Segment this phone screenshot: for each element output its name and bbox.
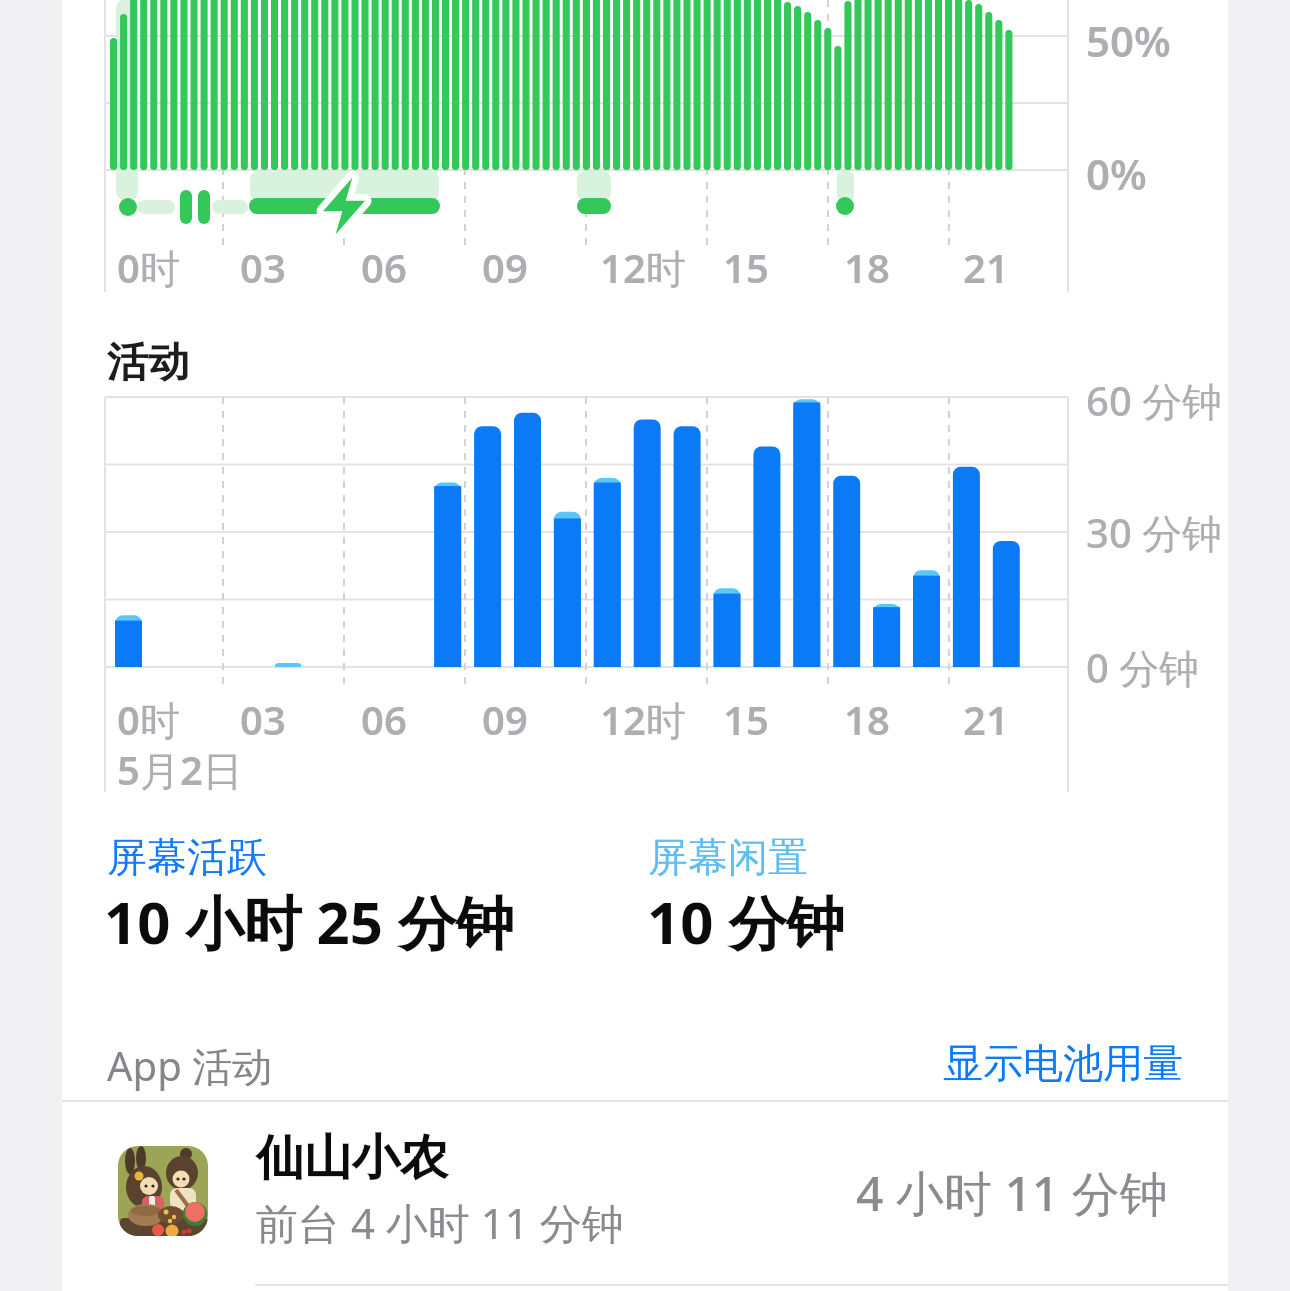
staticText: 06: [361, 692, 407, 746]
staticText: 03: [240, 692, 286, 746]
button[interactable]: 显示电池用量: [943, 1038, 1183, 1088]
staticText: 0 分钟: [1086, 640, 1200, 695]
staticText: 0时: [117, 240, 180, 295]
staticText: 屏幕活跃: [107, 832, 267, 882]
staticText: 5月2日: [117, 742, 243, 797]
staticText: 21: [963, 692, 1009, 746]
staticText: 06: [361, 240, 407, 294]
staticText: 仙山小农: [256, 1128, 448, 1188]
staticText: 18: [844, 240, 890, 294]
button[interactable]: [62, 1102, 1228, 1286]
staticText: 03: [240, 240, 286, 294]
staticText: 10 小时 25 分钟: [104, 882, 514, 961]
staticText: 0时: [117, 692, 180, 747]
staticText: 前台 4 小时 11 分钟: [256, 1194, 624, 1251]
staticText: 15: [723, 692, 769, 746]
staticText: 15: [723, 240, 769, 294]
staticText: 09: [482, 240, 528, 294]
staticText: 0%: [1086, 145, 1147, 202]
staticText: 60 分钟: [1086, 373, 1223, 428]
staticText: 10 分钟: [647, 882, 845, 961]
staticText: 50%: [1086, 12, 1171, 69]
staticText: 4 小时 11 分钟: [856, 1160, 1168, 1226]
staticText: 21: [963, 240, 1009, 294]
staticText: 18: [844, 692, 890, 746]
staticText: 活动: [107, 337, 189, 389]
staticText: 12时: [600, 692, 686, 747]
staticText: 12时: [600, 240, 686, 295]
staticText: 屏幕闲置: [648, 832, 808, 882]
staticText: 30 分钟: [1086, 505, 1223, 560]
staticText: 09: [482, 692, 528, 746]
staticText: App 活动: [107, 1038, 273, 1093]
